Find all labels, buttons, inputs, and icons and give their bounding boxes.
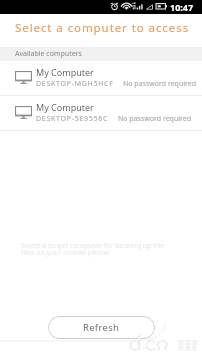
staticText: Refresh xyxy=(83,321,120,334)
staticText: Select a target computer for backing up … xyxy=(21,241,165,251)
staticText: My Computer xyxy=(36,101,94,113)
button[interactable]: Computer xyxy=(0,61,202,95)
staticText: DESKTOP-5E9556C xyxy=(36,114,109,124)
button[interactable]: Computer xyxy=(0,96,202,130)
staticText: No password required xyxy=(118,114,192,124)
staticText: files on your mobile phone xyxy=(21,248,109,258)
staticText: My Computer xyxy=(36,66,94,78)
staticText: DESKTOP-MGH5HCF xyxy=(36,79,114,89)
staticText: No password required xyxy=(123,79,197,89)
other: Computer xyxy=(15,71,32,85)
other: Computer xyxy=(15,106,32,120)
staticText: Select a computer to access xyxy=(15,20,190,36)
staticText: 10:47 xyxy=(170,1,194,13)
button[interactable]: Refresh xyxy=(48,316,155,339)
staticText: Available computers xyxy=(15,49,82,59)
